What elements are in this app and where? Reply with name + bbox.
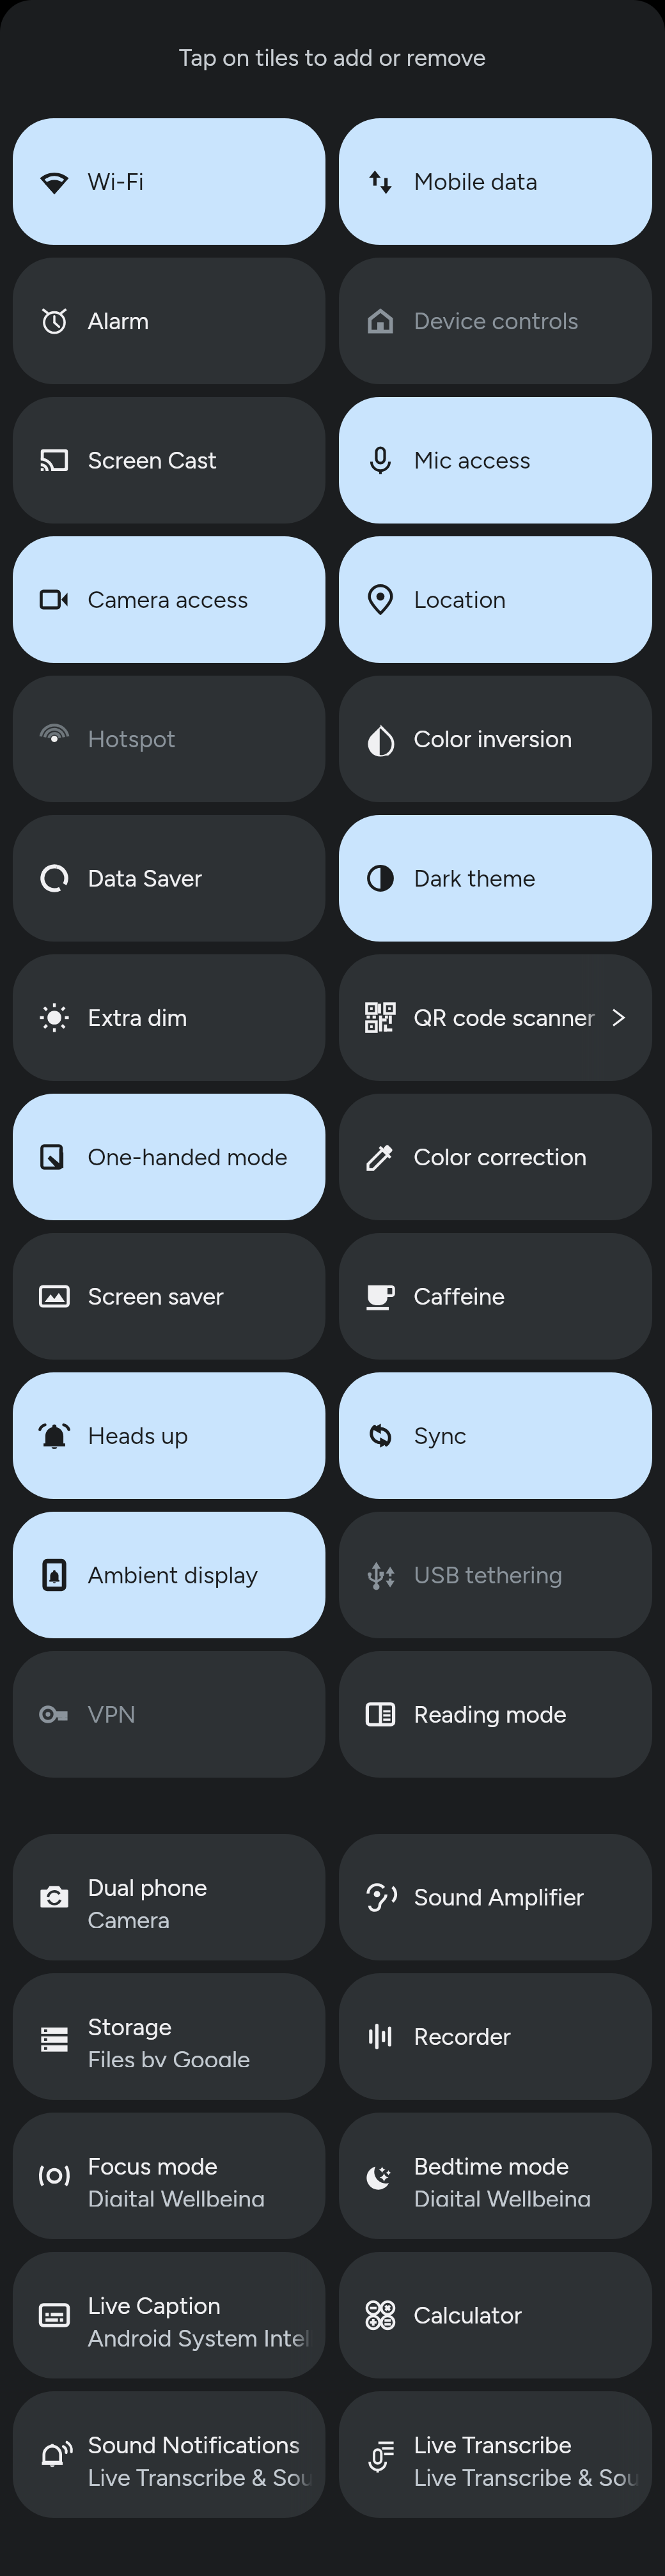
button[interactable]: Data Saver xyxy=(13,815,325,942)
button[interactable]: QR code scanner xyxy=(339,954,652,1081)
staticText: Alarm xyxy=(88,307,150,335)
staticText: Live Transcribe & Sound Notifications xyxy=(414,2463,639,2492)
staticText: Calculator xyxy=(414,2301,522,2329)
button[interactable]: Dual phone xyxy=(13,1834,325,1960)
staticText: Wi-Fi xyxy=(88,167,145,196)
button[interactable]: Dark theme xyxy=(339,815,652,942)
button[interactable]: Live Transcribe xyxy=(339,2391,652,2518)
button[interactable]: USB tethering xyxy=(339,1512,652,1638)
staticText: Focus mode xyxy=(88,2152,218,2180)
staticText: Sync xyxy=(414,1422,467,1450)
staticText: Ambient display xyxy=(88,1561,258,1589)
button[interactable]: Sync xyxy=(339,1372,652,1499)
button[interactable]: Bedtime mode xyxy=(339,2113,652,2239)
staticText: Dark theme xyxy=(414,864,536,892)
staticText: Live Caption xyxy=(88,2292,221,2320)
button[interactable]: Sound Notifications xyxy=(13,2391,325,2518)
staticText: VPN xyxy=(88,1700,136,1728)
staticText: Digital Wellbeing xyxy=(414,2185,591,2207)
other: Open QR code scanner xyxy=(609,1009,625,1026)
staticText: Storage xyxy=(88,2013,172,2041)
button[interactable]: Screen Cast xyxy=(13,397,325,524)
staticText: Bedtime mode xyxy=(414,2152,569,2180)
button[interactable]: Focus mode xyxy=(13,2113,325,2239)
staticText: Color inversion xyxy=(414,725,572,753)
staticText: Dual phone xyxy=(88,1874,208,1902)
staticText: Hotspot xyxy=(88,725,176,753)
staticText: Camera xyxy=(88,1906,170,1928)
button[interactable]: Recorder xyxy=(339,1973,652,2100)
staticText: Screen saver xyxy=(88,1282,224,1310)
staticText: QR code scanner xyxy=(414,1004,595,1032)
button[interactable]: Caffeine xyxy=(339,1233,652,1360)
button[interactable]: Heads up xyxy=(13,1372,325,1499)
button[interactable]: Screen saver xyxy=(13,1233,325,1360)
staticText: Sound Notifications xyxy=(88,2431,301,2459)
button[interactable]: One-handed mode xyxy=(13,1094,325,1220)
staticText: Device controls xyxy=(414,307,579,335)
button[interactable]: Live Caption xyxy=(13,2252,325,2378)
staticText: Location xyxy=(414,586,506,614)
button[interactable]: Alarm xyxy=(13,258,325,384)
button[interactable]: Ambient display xyxy=(13,1512,325,1638)
staticText: USB tethering xyxy=(414,1561,563,1589)
button[interactable]: Extra dim xyxy=(13,954,325,1081)
staticText: Reading mode xyxy=(414,1700,567,1728)
button[interactable]: Device controls xyxy=(339,258,652,384)
button[interactable]: Hotspot xyxy=(13,676,325,802)
staticText: Color correction xyxy=(414,1143,587,1171)
button[interactable]: Location xyxy=(339,536,652,663)
staticText: One-handed mode xyxy=(88,1143,288,1171)
button[interactable]: Storage xyxy=(13,1973,325,2100)
button[interactable]: Calculator xyxy=(339,2252,652,2378)
button[interactable]: VPN xyxy=(13,1651,325,1778)
button[interactable]: Mobile data xyxy=(339,118,652,245)
button[interactable]: Sound Amplifier xyxy=(339,1834,652,1960)
staticText: Mobile data xyxy=(414,167,538,196)
button[interactable]: Camera access xyxy=(13,536,325,663)
staticText: Sound Amplifier xyxy=(414,1883,584,1911)
button[interactable]: Mic access xyxy=(339,397,652,524)
button[interactable]: Reading mode xyxy=(339,1651,652,1778)
staticText: Recorder xyxy=(414,2022,511,2051)
staticText: Camera access xyxy=(88,586,249,614)
staticText: Mic access xyxy=(414,446,531,474)
staticText: Caffeine xyxy=(414,1282,505,1310)
staticText: Android System Intelligence xyxy=(88,2324,313,2352)
staticText: Heads up xyxy=(88,1422,189,1450)
staticText: Digital Wellbeing xyxy=(88,2185,265,2207)
staticText: Live Transcribe & Sound Notifications xyxy=(88,2463,313,2492)
button[interactable]: Color inversion xyxy=(339,676,652,802)
staticText: Files by Google xyxy=(88,2045,251,2067)
staticText: Extra dim xyxy=(88,1004,187,1032)
staticText: Tap on tiles to add or remove xyxy=(179,43,486,72)
button[interactable]: Color correction xyxy=(339,1094,652,1220)
staticText: Live Transcribe xyxy=(414,2431,572,2459)
staticText: Screen Cast xyxy=(88,446,217,474)
button[interactable]: Wi-Fi xyxy=(13,118,325,245)
staticText: Data Saver xyxy=(88,864,203,892)
